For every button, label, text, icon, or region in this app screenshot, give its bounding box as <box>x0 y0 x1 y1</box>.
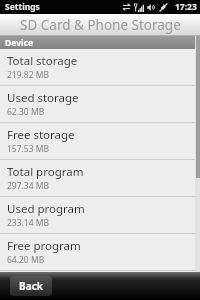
staticText: 297.34 MB <box>7 180 50 192</box>
button[interactable]: Used storage <box>0 86 200 123</box>
button[interactable]: Device <box>0 36 200 49</box>
button[interactable]: Free program <box>0 234 200 271</box>
staticText: Free storage <box>7 127 75 143</box>
staticText: 64.20 MB <box>7 254 45 266</box>
staticText: Settings <box>5 1 40 13</box>
staticText: Device <box>5 37 33 49</box>
staticText: 219.82 MB <box>7 69 50 81</box>
button[interactable]: Back <box>10 276 52 296</box>
button[interactable]: Total program <box>0 160 200 197</box>
button[interactable]: Total storage <box>0 49 200 86</box>
staticText: 157.53 MB <box>7 143 50 155</box>
staticText: Used program <box>7 201 85 217</box>
staticText: Used storage <box>7 90 79 106</box>
staticText: 62.30 MB <box>7 106 45 118</box>
staticText: Total program <box>7 164 84 180</box>
staticText: SD Card & Phone Storage <box>20 16 181 34</box>
staticText: Free program <box>7 238 81 254</box>
staticText: Back <box>19 279 43 293</box>
staticText: Total storage <box>7 53 78 69</box>
staticText: 17:23 <box>175 1 197 13</box>
button[interactable]: Free storage <box>0 123 200 160</box>
staticText: 233.14 MB <box>7 217 50 229</box>
button[interactable]: Used program <box>0 197 200 234</box>
